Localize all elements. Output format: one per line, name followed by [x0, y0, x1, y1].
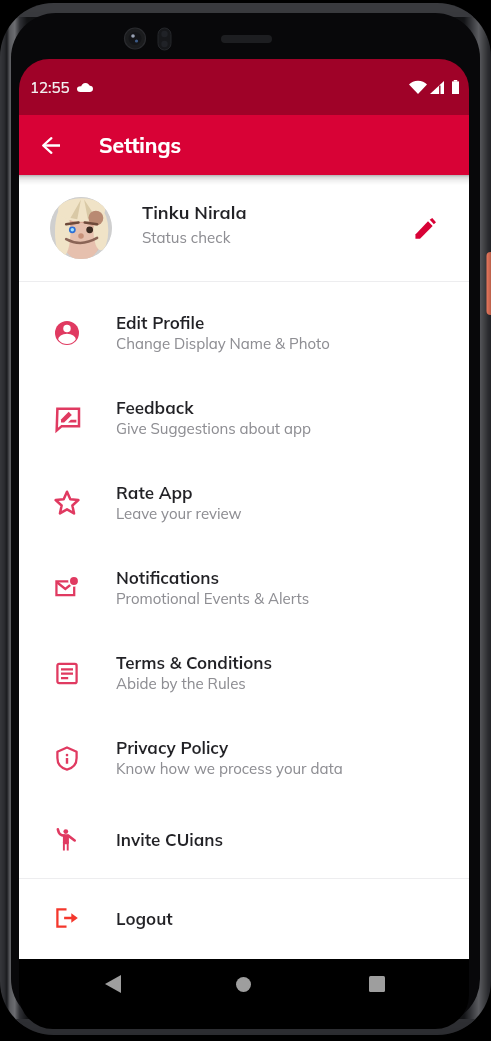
button[interactable]: Rate App	[19, 460, 469, 545]
button[interactable]: Logout	[19, 879, 469, 957]
staticText: Settings	[99, 132, 182, 158]
button[interactable]: Tinku Nirala	[19, 175, 469, 281]
button[interactable]: Edit Profile	[19, 290, 469, 375]
staticText: Logout	[116, 908, 173, 929]
staticText: Give Suggestions about app	[116, 419, 311, 438]
staticText: Invite CUians	[116, 829, 223, 850]
staticText: Notifications	[116, 567, 220, 588]
staticText: Know how we process your data	[116, 759, 343, 778]
button[interactable]: Home	[221, 962, 265, 1006]
button[interactable]: Feedback	[19, 375, 469, 460]
button[interactable]: Recents	[355, 962, 399, 1006]
staticText: Feedback	[116, 397, 194, 418]
staticText: Terms & Conditions	[116, 652, 273, 673]
button[interactable]: Invite CUians	[19, 800, 469, 878]
staticText: Leave your review	[116, 504, 242, 523]
staticText: Rate App	[116, 482, 193, 503]
button[interactable]: Privacy Policy	[19, 715, 469, 800]
staticText: Change Display Name & Photo	[116, 334, 330, 353]
staticText: Promotional Events & Alerts	[116, 589, 310, 608]
button[interactable]: Notifications	[19, 545, 469, 630]
button[interactable]: Edit profile	[403, 206, 447, 250]
button[interactable]: Back	[31, 125, 71, 165]
button[interactable]: Terms & Conditions	[19, 630, 469, 715]
button[interactable]: Back	[91, 962, 135, 1006]
staticText: Tinku Nirala	[142, 201, 247, 224]
staticText: Status check	[142, 228, 231, 247]
staticText: Edit Profile	[116, 312, 205, 333]
staticText: 12:55	[30, 78, 70, 97]
staticText: Abide by the Rules	[116, 674, 246, 693]
staticText: Privacy Policy	[116, 737, 229, 758]
